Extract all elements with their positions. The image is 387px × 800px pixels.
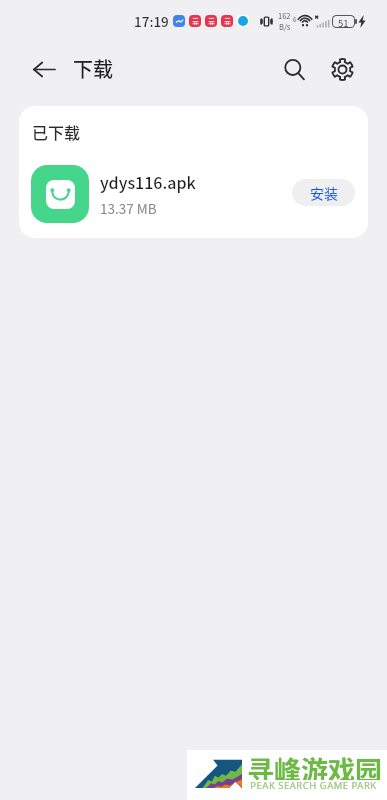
button[interactable]: Back <box>32 57 56 81</box>
button[interactable]: Settings <box>322 49 362 89</box>
staticText: 6 <box>293 14 297 23</box>
staticText: 寻峰游戏园 <box>247 750 382 780</box>
staticText: PEAK SEARCH GAME PARK <box>247 779 380 792</box>
staticText: 已下载 <box>32 120 81 143</box>
staticText: ydys116.apk <box>100 170 196 193</box>
staticText: 51 <box>338 16 349 27</box>
button[interactable]: Search <box>274 49 314 89</box>
button[interactable]: ydys116.apk <box>19 165 368 238</box>
staticText: 安装 <box>310 183 338 203</box>
staticText: 13.37 MB <box>100 198 157 218</box>
staticText: 162 <box>278 10 291 21</box>
staticText: 17:19 <box>134 11 169 31</box>
button[interactable]: 安装 <box>292 179 355 206</box>
staticText: 下载 <box>73 54 113 83</box>
staticText: B/s <box>279 21 291 32</box>
